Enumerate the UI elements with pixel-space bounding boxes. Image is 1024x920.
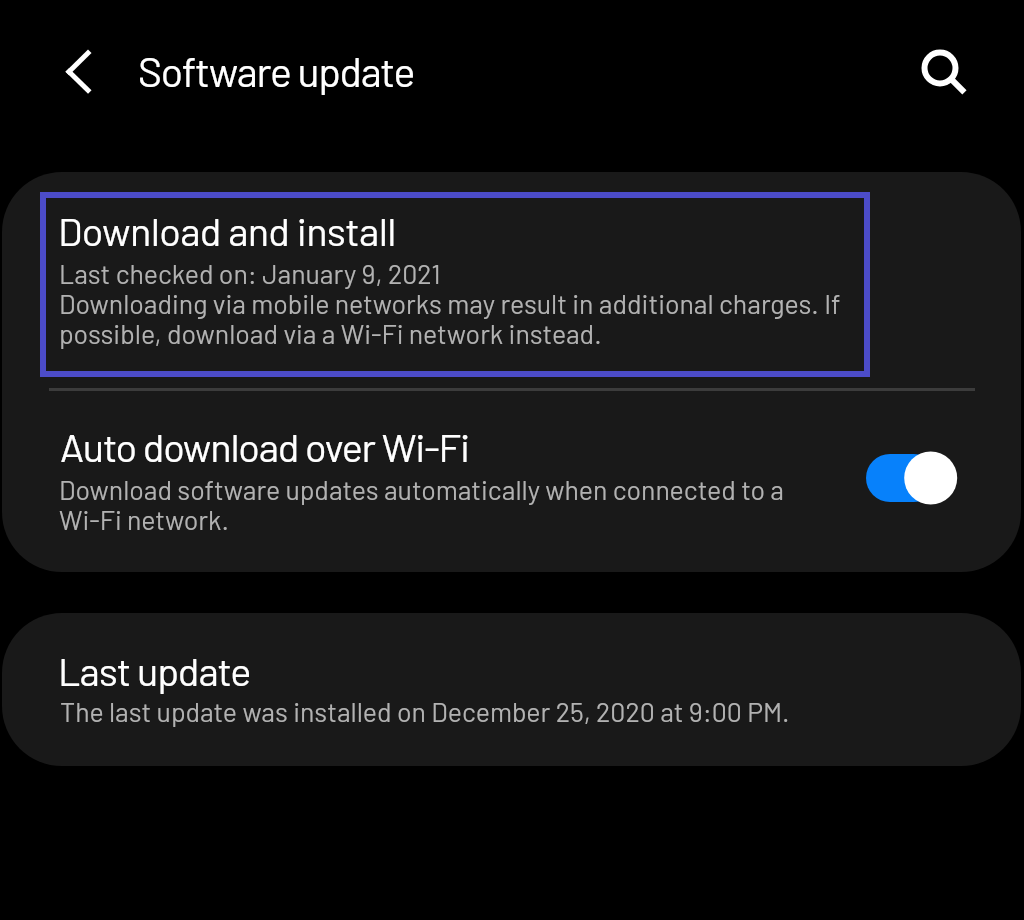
button[interactable]: Download and install — [2, 172, 1021, 388]
staticText: Software update — [138, 46, 415, 95]
staticText: Last checked on: January 9, 2021 Downloa… — [59, 257, 841, 350]
staticText: Download software updates automatically … — [59, 473, 784, 536]
button[interactable]: Last update — [2, 613, 1021, 766]
button[interactable]: Search — [900, 28, 980, 108]
staticText: The last update was installed on Decembe… — [60, 695, 790, 727]
button[interactable]: Auto download over Wi-Fi — [2, 391, 1021, 572]
staticText: Download and install — [58, 206, 396, 254]
staticText: Last update — [58, 646, 251, 694]
staticText: Auto download over Wi-Fi — [60, 422, 469, 470]
button[interactable]: Navigate up — [38, 30, 118, 110]
button[interactable]: Auto download over Wi-Fi, on — [860, 442, 964, 514]
